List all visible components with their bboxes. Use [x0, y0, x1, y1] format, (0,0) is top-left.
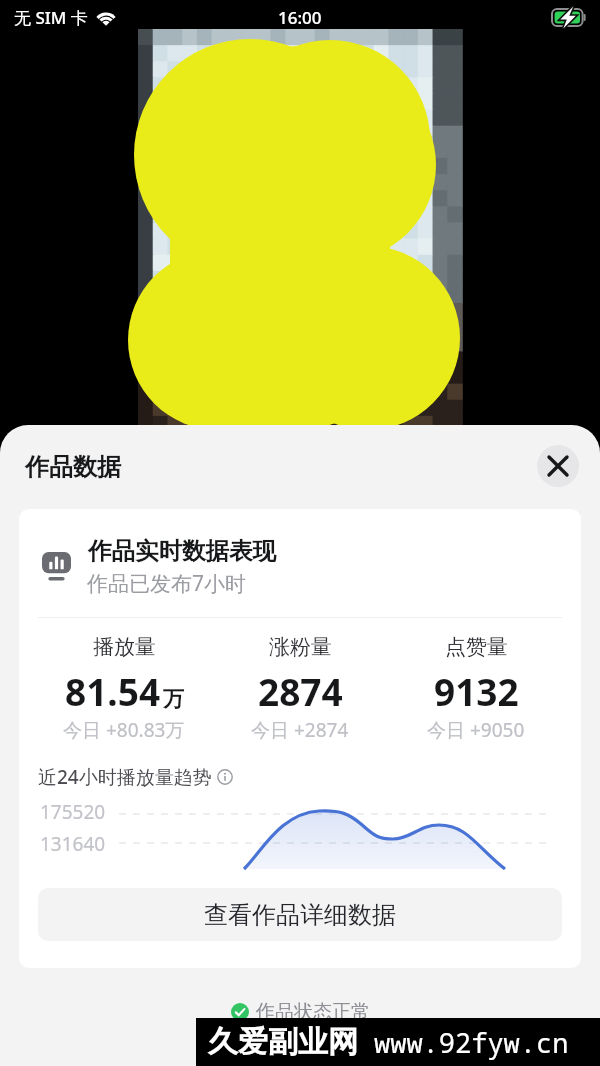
- staticText: 作品已发布7小时: [87, 569, 247, 598]
- staticText: 无 SIM 卡: [14, 6, 88, 29]
- staticText: 涨粉量: [269, 634, 332, 660]
- staticText: 作品数据: [25, 452, 121, 482]
- staticText: 今日 +2874: [251, 717, 349, 743]
- staticText: 81.54: [65, 666, 161, 716]
- staticText: 今日 +9050: [427, 717, 525, 743]
- button[interactable]: Close: [537, 445, 579, 487]
- staticText: 今日 +80.83万: [63, 717, 185, 743]
- staticText: 131640: [40, 831, 106, 857]
- staticText: www.92fyw.cn: [374, 1024, 569, 1061]
- staticText: 查看作品详细数据: [204, 900, 396, 930]
- staticText: 2874: [258, 666, 343, 716]
- staticText: 16:00: [278, 6, 322, 29]
- staticText: 9132: [434, 666, 519, 716]
- staticText: 作品实时数据表现: [88, 536, 276, 566]
- staticText: 播放量: [93, 634, 156, 660]
- staticText: 万: [163, 686, 184, 712]
- staticText: 作品状态正常: [256, 1000, 370, 1024]
- staticText: 久爱副业网: [208, 1023, 358, 1061]
- staticText: 175520: [40, 799, 106, 825]
- staticText: 点赞量: [445, 634, 508, 660]
- button[interactable]: 查看作品详细数据: [38, 888, 562, 941]
- staticText: 近24小时播放量趋势: [38, 764, 212, 790]
